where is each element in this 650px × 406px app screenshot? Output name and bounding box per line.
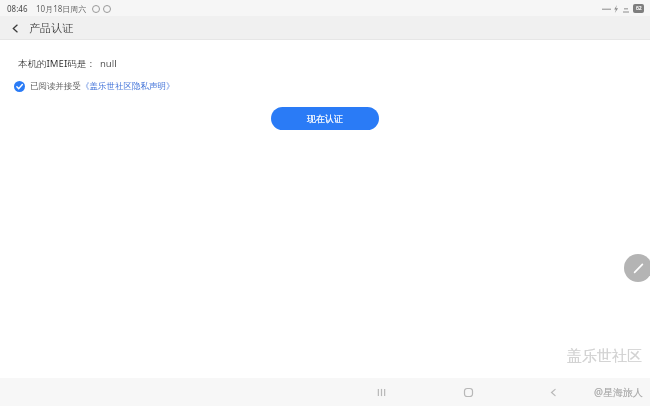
staticText: 08:46 bbox=[7, 3, 28, 14]
staticText: @星海旅人 bbox=[594, 385, 643, 399]
button[interactable]: 现在认证 bbox=[271, 107, 379, 130]
button[interactable]: 已阅读并接受 bbox=[12, 79, 177, 94]
button[interactable]: Recents bbox=[368, 379, 394, 405]
staticText: 现在认证 bbox=[307, 113, 343, 124]
staticText: 62 bbox=[636, 5, 642, 12]
button[interactable]: Edit bbox=[624, 254, 650, 282]
staticText: 《盖乐世社区隐私声明》 bbox=[81, 81, 175, 92]
button[interactable]: Back bbox=[5, 18, 25, 38]
button[interactable]: Home bbox=[455, 379, 481, 405]
button[interactable]: Back bbox=[540, 379, 566, 405]
staticText: 已阅读并接受 bbox=[30, 81, 81, 92]
staticText: 10月18日周六 bbox=[36, 3, 87, 14]
staticText: 盖乐世社区 bbox=[567, 347, 642, 366]
staticText: 本机的IMEI码是： bbox=[18, 57, 96, 70]
staticText: null bbox=[100, 57, 117, 70]
staticText: 产品认证 bbox=[29, 21, 73, 35]
